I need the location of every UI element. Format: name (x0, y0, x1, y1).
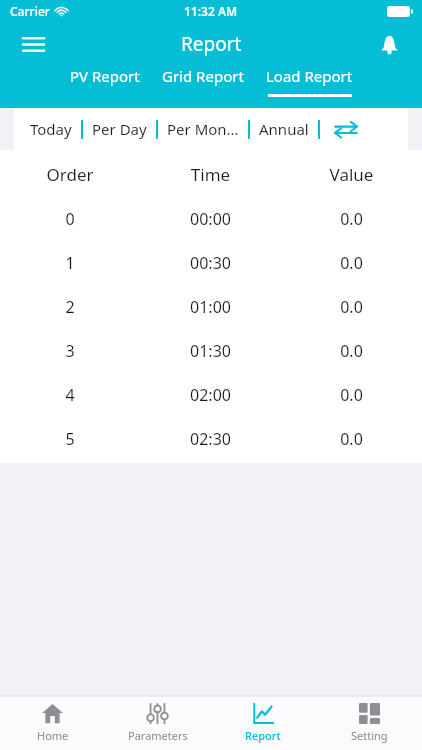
staticText: 0.0 (281, 252, 422, 274)
staticText: 0 (0, 208, 140, 230)
staticText: 0.0 (281, 340, 422, 362)
staticText: Parameters (128, 728, 188, 743)
button[interactable]: Parameters (105, 696, 210, 750)
staticText: Home (37, 728, 69, 743)
staticText: PV Report (70, 66, 140, 86)
button[interactable]: Today (21, 108, 81, 150)
staticText: 02:00 (140, 384, 281, 406)
button[interactable]: Load Report (261, 66, 358, 97)
staticText: Order (0, 163, 140, 186)
staticText: Today (30, 119, 72, 139)
button[interactable]: Notifications (368, 23, 410, 65)
button[interactable]: Swap (320, 108, 372, 150)
staticText: 0.0 (281, 384, 422, 406)
staticText: 01:00 (140, 296, 281, 318)
staticText: 4 (0, 384, 140, 406)
button[interactable]: Setting (316, 696, 422, 750)
button[interactable]: Grid Report (157, 66, 249, 97)
staticText: Per Mon... (167, 119, 239, 139)
staticText: 5 (0, 428, 140, 450)
staticText: Report (181, 31, 242, 57)
staticText: Value (281, 163, 422, 186)
staticText: 11:32 AM (184, 3, 238, 19)
staticText: Per Day (92, 119, 147, 139)
staticText: Report (245, 728, 281, 743)
button[interactable]: Annual (250, 108, 318, 150)
button[interactable]: PV Report (65, 66, 145, 97)
staticText: 02:30 (140, 428, 281, 450)
staticText: Load Report (266, 66, 353, 86)
staticText: Setting (351, 728, 388, 743)
button[interactable]: Per Day (83, 108, 156, 150)
button[interactable]: Home (0, 696, 105, 750)
staticText: 0.0 (281, 296, 422, 318)
staticText: 0.0 (281, 208, 422, 230)
staticText: 1 (0, 252, 140, 274)
staticText: Grid Report (162, 66, 244, 86)
staticText: 0.0 (281, 428, 422, 450)
staticText: Time (140, 163, 281, 186)
staticText: 2 (0, 296, 140, 318)
staticText: 01:30 (140, 340, 281, 362)
staticText: Annual (259, 119, 309, 139)
button[interactable]: Menu (12, 23, 54, 65)
staticText: Carrier (10, 3, 50, 19)
staticText: 3 (0, 340, 140, 362)
staticText: 00:00 (140, 208, 281, 230)
staticText: 00:30 (140, 252, 281, 274)
button[interactable]: Per Mon... (158, 108, 248, 150)
button[interactable]: Report (210, 696, 316, 750)
